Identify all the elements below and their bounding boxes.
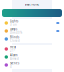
staticText: Smart Home	[24, 3, 39, 6]
button[interactable]: Scenes	[2, 61, 62, 69]
staticText: Heat	[10, 45, 16, 49]
button[interactable]: Lamps	[2, 27, 62, 35]
button[interactable]: Blinds	[2, 35, 62, 43]
staticText: Alarm	[10, 53, 17, 57]
staticText: Armed	[10, 57, 19, 60]
button[interactable]: Heat	[2, 45, 62, 53]
staticText: 4	[10, 65, 12, 68]
staticText: 3 on	[10, 23, 17, 26]
staticText: Scenes	[10, 61, 19, 65]
staticText: Lamps	[10, 27, 17, 31]
staticText: Closed	[10, 39, 20, 42]
staticText: Blinds	[10, 35, 19, 39]
button[interactable]: Lights	[2, 19, 62, 27]
button[interactable]: Alarm	[2, 53, 62, 61]
staticText: Dim 40%	[10, 31, 22, 34]
staticText: 21°	[10, 49, 15, 52]
staticText: Lights	[10, 19, 18, 23]
